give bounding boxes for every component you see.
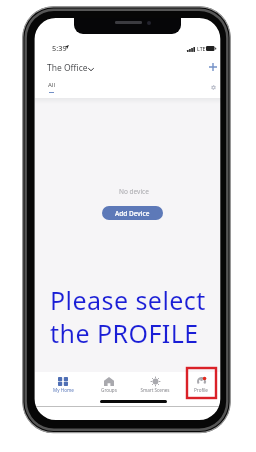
staticText: Please select the PROFILE — [50, 283, 206, 350]
staticText: LTE — [197, 45, 206, 52]
button[interactable]: Smart Scenes — [133, 372, 177, 394]
staticText: My Home — [53, 387, 74, 393]
staticText: Groups — [101, 387, 117, 393]
button[interactable]: The Office — [47, 61, 95, 75]
button[interactable]: Profile — [179, 372, 221, 394]
button[interactable]: Add Device — [102, 206, 163, 220]
button[interactable]: Settings — [206, 80, 221, 95]
staticText: The Office — [47, 62, 88, 74]
button[interactable]: Add device — [204, 58, 221, 75]
staticText: All — [48, 81, 55, 89]
button[interactable]: My Home — [41, 372, 85, 394]
button[interactable]: All — [44, 81, 58, 96]
button[interactable]: Groups — [87, 372, 131, 394]
staticText: Add Device — [115, 209, 150, 218]
staticText: Smart Scenes — [140, 387, 170, 393]
staticText: Profile — [194, 387, 208, 393]
staticText: No device — [119, 187, 149, 196]
staticText: 5:39 — [52, 43, 67, 53]
